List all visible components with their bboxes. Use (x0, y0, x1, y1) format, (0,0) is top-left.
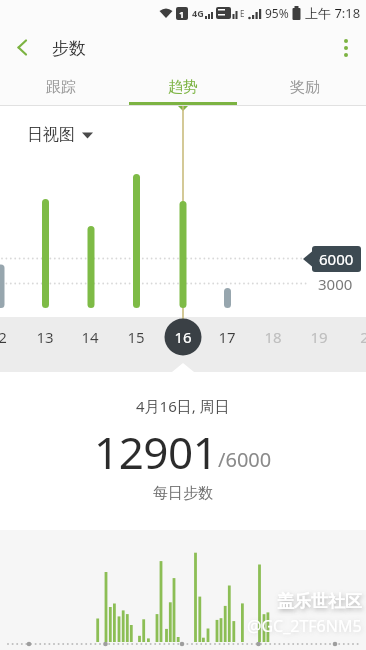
staticText: 2 (0, 327, 7, 347)
button[interactable]: 13 (27, 327, 63, 347)
staticText: 上午 7:18 (305, 4, 361, 22)
staticText: 1 (179, 8, 185, 20)
button[interactable]: 17 (209, 327, 245, 347)
staticText: 3000 (318, 274, 353, 294)
staticText: 12901 (94, 422, 218, 482)
staticText: 17 (218, 327, 236, 347)
staticText: 奖励 (290, 78, 320, 97)
button[interactable]: 16 (165, 327, 201, 347)
staticText: 跟踪 (46, 78, 76, 97)
button[interactable]: 14 (72, 327, 108, 347)
button[interactable]: 18 (255, 327, 291, 347)
button[interactable]: 2 (0, 327, 20, 347)
button[interactable]: 趋势 (122, 64, 244, 105)
button[interactable] (326, 29, 366, 67)
staticText: 6000 (319, 249, 354, 269)
button[interactable]: 日视图 (27, 125, 93, 145)
staticText: 18 (264, 327, 282, 347)
staticText: 2 (360, 327, 366, 347)
button[interactable]: 奖励 (244, 64, 366, 105)
staticText: 16 (174, 327, 192, 347)
staticText: 每日步数 (153, 484, 213, 503)
staticText: E (240, 8, 245, 19)
staticText: 盖乐世社区 (277, 591, 362, 612)
button[interactable]: 15 (118, 327, 154, 347)
staticText: 14 (81, 327, 99, 347)
button[interactable]: 19 (301, 327, 337, 347)
staticText: 15 (127, 327, 145, 347)
staticText: 4月16日, 周日 (136, 396, 230, 416)
staticText: 19 (310, 327, 328, 347)
button[interactable]: 2 (346, 327, 366, 347)
staticText: /6000 (218, 446, 272, 473)
button[interactable] (0, 28, 44, 66)
staticText: @GC_2TF6NM5 (247, 615, 362, 637)
button[interactable]: 跟踪 (0, 64, 122, 105)
staticText: 95% (265, 5, 289, 21)
staticText: 日视图 (27, 125, 75, 145)
staticText: 步数 (52, 38, 86, 59)
staticText: 趋势 (168, 78, 198, 97)
staticText: 4G (192, 7, 204, 19)
staticText: 13 (36, 327, 54, 347)
